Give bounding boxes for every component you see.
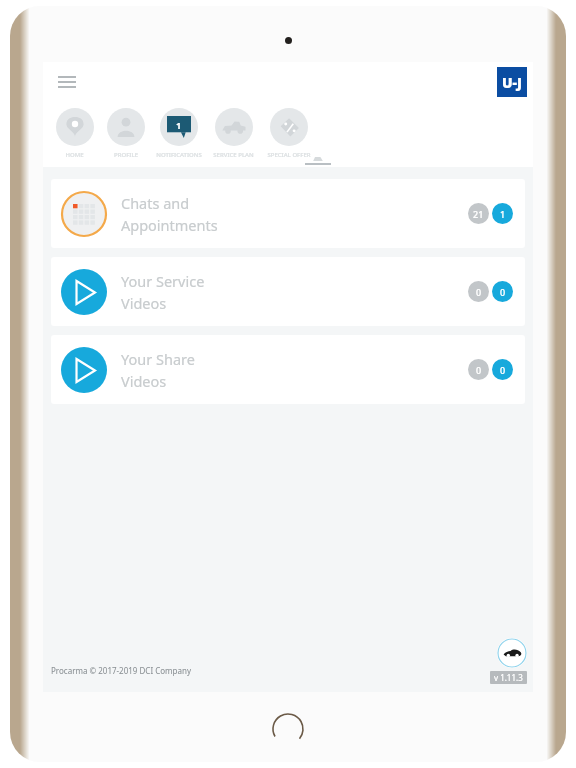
staticText: v 1.11.3: [494, 672, 523, 683]
staticText: SPECIAL OFFER: [267, 151, 311, 159]
staticText: 0: [500, 286, 506, 298]
staticText: NOTIFICATIONS: [156, 151, 202, 159]
staticText: 21: [473, 208, 484, 220]
button[interactable]: 1: [151, 106, 206, 159]
button[interactable]: Your Share: [51, 335, 525, 404]
button[interactable]: SPECIAL OFFER: [261, 106, 316, 159]
staticText: 1: [500, 208, 506, 220]
staticText: Appointments: [121, 215, 218, 235]
staticText: Chats and: [121, 193, 190, 213]
button[interactable]: Chats and: [51, 179, 525, 248]
staticText: Your Service: [121, 271, 205, 291]
staticText: Procarma © 2017-2019 DCI Company: [51, 665, 191, 676]
button[interactable]: Menu: [51, 66, 83, 98]
staticText: 0: [500, 364, 506, 376]
button[interactable]: Logo: [497, 67, 527, 97]
staticText: U-J: [502, 73, 522, 92]
staticText: SERVICE PLAN: [213, 151, 254, 159]
staticText: Videos: [121, 371, 167, 391]
staticText: HOME: [65, 151, 84, 159]
staticText: 0: [476, 286, 482, 298]
button[interactable]: Vehicle: [497, 638, 527, 668]
button[interactable]: PROFILE: [100, 106, 151, 159]
staticText: Your Share: [121, 349, 195, 369]
button[interactable]: Your Service: [51, 257, 525, 326]
staticText: 1: [176, 119, 182, 131]
button[interactable]: HOME: [49, 106, 100, 159]
staticText: 0: [476, 364, 482, 376]
button[interactable]: SERVICE PLAN: [206, 106, 261, 159]
staticText: Videos: [121, 293, 167, 313]
staticText: PROFILE: [114, 151, 138, 159]
